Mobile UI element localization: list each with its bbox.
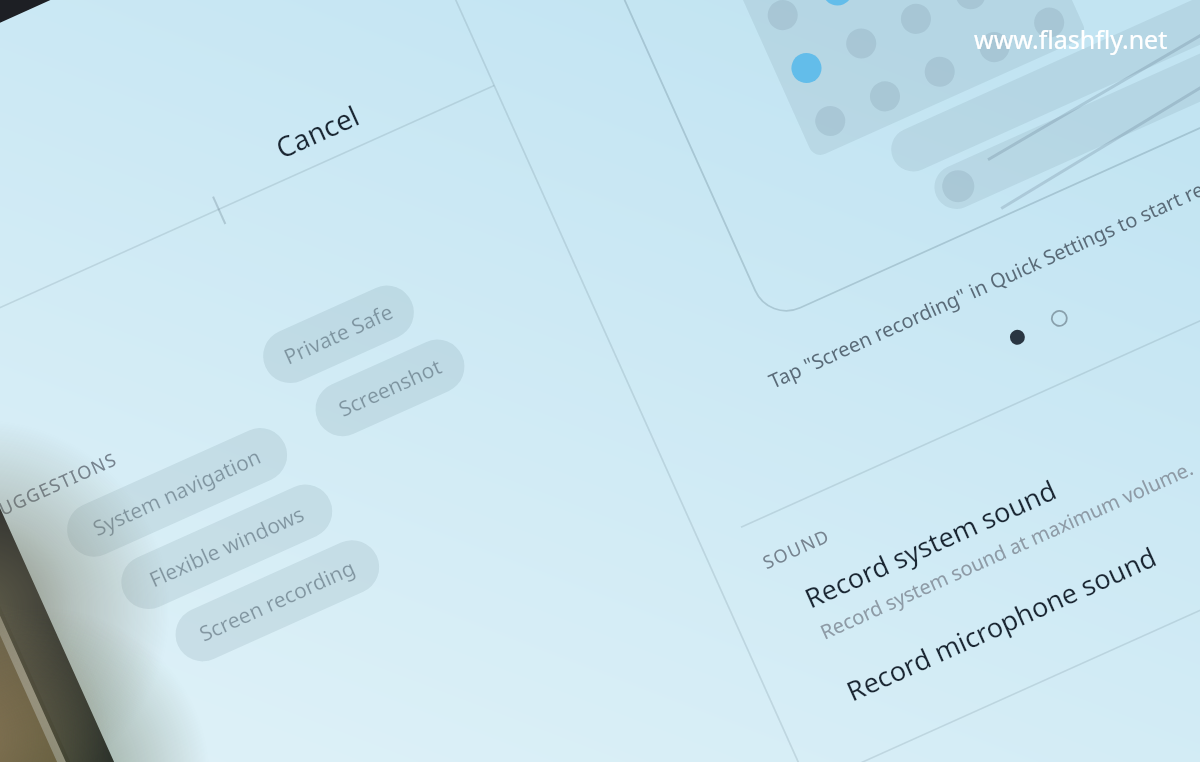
button[interactable]: Screen recording settings on tablet <box>0 0 1200 762</box>
